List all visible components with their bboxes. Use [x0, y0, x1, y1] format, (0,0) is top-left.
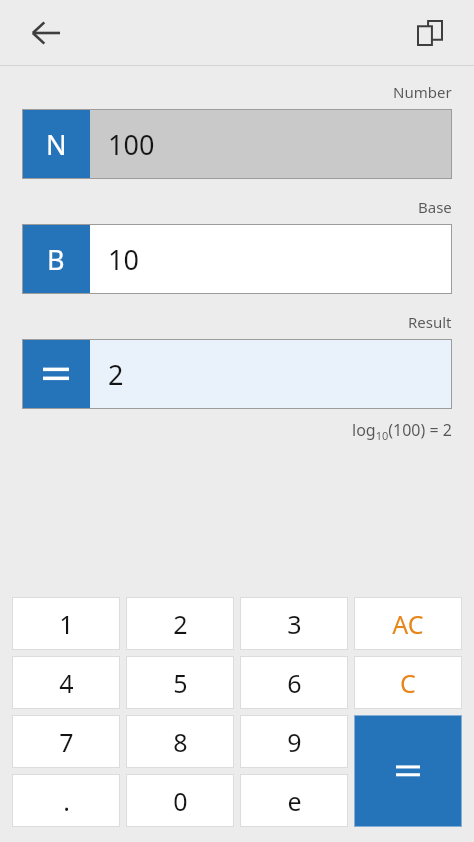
staticText: 9	[287, 725, 302, 759]
button[interactable]: B	[22, 224, 452, 294]
staticText: e	[287, 784, 302, 818]
button[interactable]: 2	[126, 597, 234, 650]
staticText: 4	[59, 666, 74, 700]
button[interactable]: 1	[12, 597, 120, 650]
button[interactable]: 5	[126, 656, 234, 709]
staticText: Number	[393, 82, 452, 102]
button[interactable]: 0	[126, 774, 234, 827]
button[interactable]: 7	[12, 715, 120, 768]
staticText: 6	[287, 666, 302, 700]
button[interactable]: N	[22, 109, 452, 179]
staticText: Base	[418, 197, 452, 217]
staticText: 2	[108, 356, 124, 393]
staticText: 5	[173, 666, 188, 700]
button[interactable]: 6	[240, 656, 348, 709]
button[interactable]: .	[12, 774, 120, 827]
button[interactable]: 3	[240, 597, 348, 650]
staticText: 1	[59, 607, 74, 641]
staticText: Result	[408, 312, 452, 332]
button[interactable]: C	[354, 656, 462, 709]
staticText: 0	[173, 784, 188, 818]
staticText: AC	[392, 607, 424, 641]
staticText: 100	[108, 126, 155, 163]
button[interactable]: Back	[22, 9, 70, 57]
staticText: C	[400, 666, 416, 700]
staticText: .	[63, 784, 70, 818]
button[interactable]: AC	[354, 597, 462, 650]
staticText: 7	[59, 725, 74, 759]
button[interactable]: 2	[22, 339, 452, 409]
staticText: 2	[173, 607, 188, 641]
button[interactable]: e	[240, 774, 348, 827]
staticText: 8	[173, 725, 188, 759]
button[interactable]: Equals	[354, 715, 462, 827]
staticText: N	[46, 126, 67, 163]
staticText: 3	[287, 607, 302, 641]
button[interactable]: Copy	[406, 9, 454, 57]
button[interactable]: 4	[12, 656, 120, 709]
button[interactable]: 8	[126, 715, 234, 768]
staticText: B	[47, 241, 65, 278]
staticText: log10(100) = 2	[352, 419, 452, 443]
button[interactable]: 9	[240, 715, 348, 768]
staticText: 10	[108, 241, 139, 278]
